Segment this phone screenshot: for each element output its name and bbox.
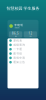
staticText: 李晓明	[14, 23, 23, 27]
button[interactable]: 请假申请	[7, 56, 38, 60]
staticText: 课程表	[13, 39, 22, 42]
staticText: 待办	[29, 36, 31, 37]
button[interactable]: 一卡通	[7, 47, 38, 51]
staticText: 86.5	[12, 32, 19, 35]
button[interactable]: 课程表	[7, 38, 38, 43]
button[interactable]: 通知公告	[7, 60, 38, 64]
button[interactable]: 图书馆	[7, 51, 38, 56]
button[interactable]: 成绩查询	[7, 43, 38, 47]
button[interactable]: 86.5	[9, 31, 22, 37]
staticText: 请假申请	[13, 56, 25, 59]
staticText: 12	[28, 32, 32, 35]
staticText: 图书馆	[13, 52, 22, 55]
staticText: 通知公告	[13, 61, 25, 64]
staticText: 计算机学院	[14, 27, 19, 29]
button[interactable]: 12	[24, 31, 37, 37]
staticText: 一卡通	[13, 48, 22, 51]
staticText: 余额	[15, 36, 17, 37]
staticText: 成绩查询	[13, 43, 25, 47]
staticText: 智慧校园 学生服务	[6, 6, 39, 11]
